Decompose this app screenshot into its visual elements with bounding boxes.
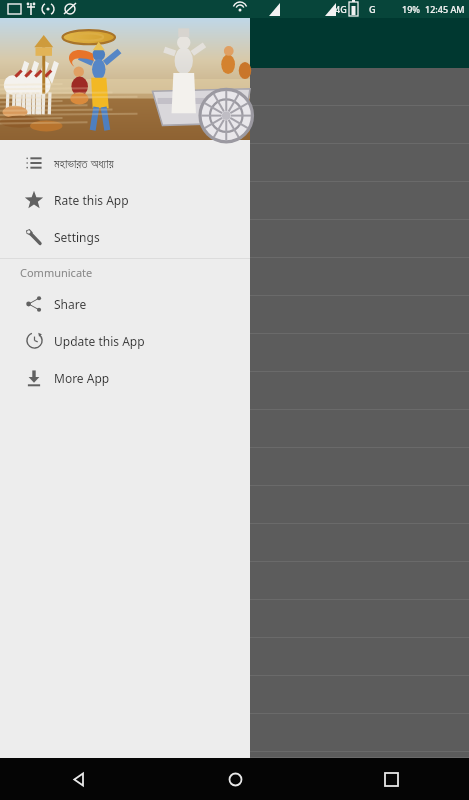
button[interactable]: More App [0, 359, 250, 396]
button[interactable]: Share [0, 285, 250, 322]
button[interactable]: Home [157, 758, 313, 800]
staticText: Rate this App [54, 192, 129, 208]
button[interactable]: Rate this App [0, 181, 250, 218]
button[interactable] [0, 524, 469, 562]
button[interactable] [0, 182, 469, 220]
button[interactable]: মহাভারত অধ্যায় [0, 144, 250, 181]
button[interactable] [0, 334, 469, 372]
button[interactable] [0, 68, 469, 106]
button[interactable] [0, 676, 469, 714]
button[interactable] [0, 144, 469, 182]
button[interactable] [0, 486, 469, 524]
button[interactable] [0, 372, 469, 410]
staticText: Settings [54, 229, 100, 245]
staticText: মহাভারত অধ্যায় [54, 155, 114, 171]
button[interactable] [0, 752, 469, 758]
staticText: Share [54, 296, 87, 312]
button[interactable] [0, 258, 469, 296]
button[interactable] [0, 714, 469, 752]
staticText: Communicate [20, 265, 93, 280]
button[interactable] [0, 562, 469, 600]
button[interactable] [0, 410, 469, 448]
staticText: G [369, 3, 376, 15]
button[interactable] [0, 220, 469, 258]
button[interactable]: Settings [0, 218, 250, 255]
button[interactable] [0, 448, 469, 486]
button[interactable] [0, 296, 469, 334]
staticText: 4G [335, 3, 347, 15]
staticText: More App [54, 370, 110, 386]
button[interactable] [0, 638, 469, 676]
button[interactable] [0, 106, 469, 144]
staticText: 19% [402, 3, 420, 15]
button[interactable]: Back [0, 758, 157, 800]
button[interactable] [0, 600, 469, 638]
button[interactable]: Recent apps [313, 758, 469, 800]
staticText: Update this App [54, 333, 145, 349]
staticText: 12:45 AM [425, 3, 465, 15]
button[interactable]: Update this App [0, 322, 250, 359]
